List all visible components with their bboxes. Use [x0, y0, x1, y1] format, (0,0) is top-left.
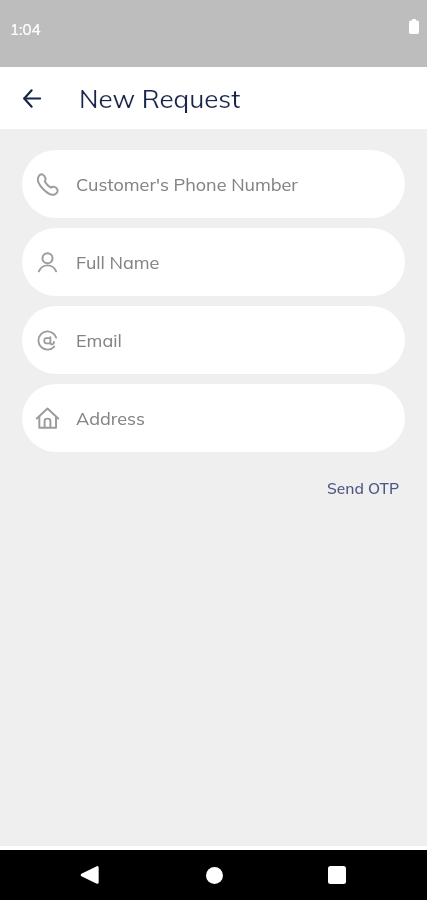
staticText: Full Name [76, 251, 160, 274]
button[interactable]: Recent apps [309, 850, 365, 900]
staticText: Address [76, 407, 145, 430]
button[interactable]: Home [186, 850, 242, 900]
button[interactable]: Customer's Phone Number [22, 150, 405, 218]
button[interactable]: Email [22, 306, 405, 374]
button[interactable]: Back [62, 850, 118, 900]
staticText: Customer's Phone Number [76, 173, 298, 196]
staticText: Email [76, 329, 122, 352]
staticText: Send OTP [327, 478, 400, 497]
staticText: New Request [79, 82, 241, 115]
staticText: 1:04 [10, 20, 41, 39]
button[interactable]: Full Name [22, 228, 405, 296]
button[interactable]: Back [8, 75, 55, 122]
button[interactable]: Send OTP [325, 475, 402, 500]
button[interactable]: Address [22, 384, 405, 452]
